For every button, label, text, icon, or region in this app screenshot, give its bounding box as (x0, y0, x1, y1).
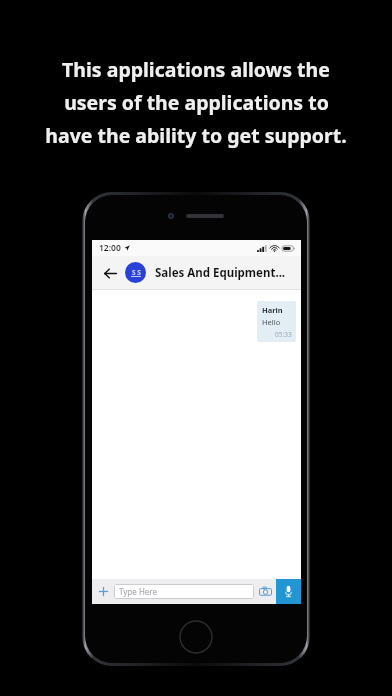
staticText: 05:33 (275, 330, 292, 339)
button[interactable]: Type Here (114, 584, 254, 599)
staticText: 12:00 (99, 242, 121, 254)
button[interactable]: Camera (254, 579, 276, 604)
staticText: S S (132, 268, 141, 277)
staticText: Type Here (119, 586, 157, 597)
button[interactable]: Voice message (276, 579, 301, 604)
staticText: Hello (262, 317, 281, 327)
staticText: Harin (262, 305, 283, 315)
button[interactable]: Back (99, 262, 121, 284)
button[interactable]: Harin (257, 301, 296, 342)
staticText: users of the applications to (64, 89, 329, 116)
staticText: This applications allows the (62, 56, 330, 83)
staticText: have the ability to get support. (45, 122, 347, 149)
staticText: Sales And Equipment... (155, 265, 286, 281)
button[interactable]: Contact avatar (125, 262, 146, 283)
button[interactable]: Add attachment (92, 579, 114, 604)
